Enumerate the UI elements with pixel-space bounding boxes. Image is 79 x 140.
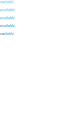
staticText: available bbox=[0, 24, 15, 28]
staticText: available bbox=[0, 8, 15, 12]
staticText: available bbox=[0, 0, 14, 4]
staticText: available bbox=[0, 32, 14, 36]
staticText: available bbox=[0, 16, 15, 20]
